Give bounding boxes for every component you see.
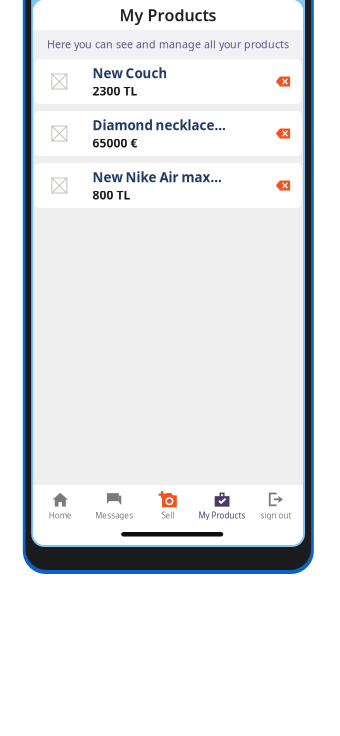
button[interactable]: Messages xyxy=(87,485,141,545)
staticText: New Couch xyxy=(92,64,167,82)
button[interactable]: Remove New Couch xyxy=(275,75,301,87)
image xyxy=(51,73,67,89)
staticText: 2300 TL xyxy=(92,83,137,99)
staticText: sign out xyxy=(260,510,291,521)
button[interactable]: New Couch xyxy=(35,59,301,104)
button[interactable]: My Products xyxy=(33,0,303,30)
image xyxy=(51,125,67,141)
button[interactable]: Home xyxy=(33,485,87,545)
button[interactable]: Diamond necklace… xyxy=(35,111,301,156)
staticText: 65000 € xyxy=(92,135,137,151)
staticText: Home xyxy=(49,510,72,521)
button[interactable]: Sell xyxy=(141,485,195,545)
button[interactable]: New Nike Air max… xyxy=(35,163,301,208)
staticText: My Products xyxy=(120,4,217,26)
image xyxy=(51,177,67,193)
button[interactable]: My Products xyxy=(195,485,249,545)
button[interactable]: sign out xyxy=(249,485,303,545)
button[interactable]: Remove New Nike Air max… xyxy=(275,179,301,191)
staticText: 800 TL xyxy=(92,187,130,203)
staticText: Sell xyxy=(162,510,175,521)
staticText: Here you can see and manage all your pro… xyxy=(47,37,289,51)
staticText: My Products xyxy=(199,510,246,521)
staticText: New Nike Air max… xyxy=(92,168,221,186)
button[interactable]: Remove Diamond necklace… xyxy=(275,127,301,139)
staticText: Messages xyxy=(95,510,133,521)
staticText: Diamond necklace… xyxy=(92,116,225,134)
